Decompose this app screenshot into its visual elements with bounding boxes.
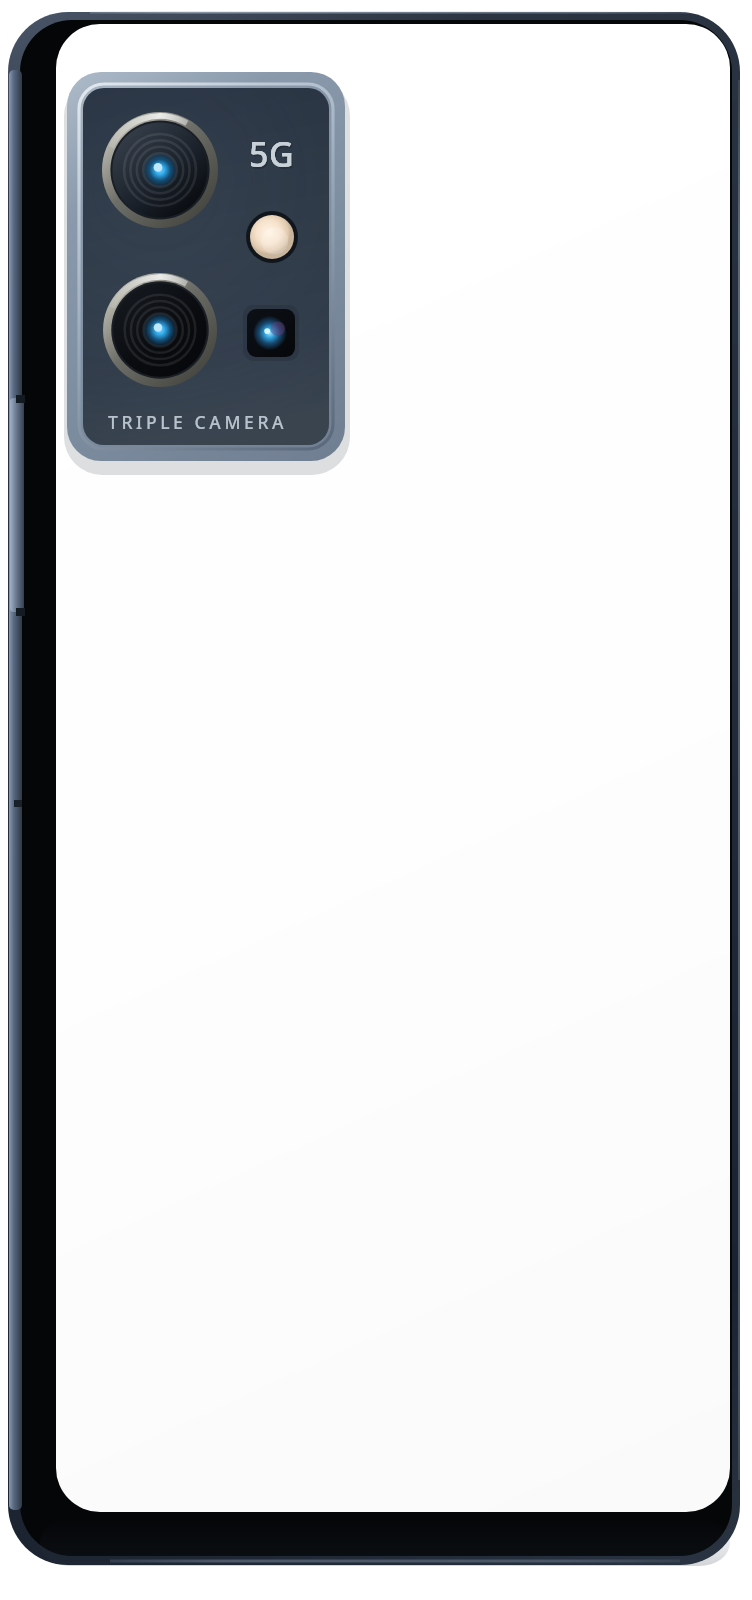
button[interactable]: Phone back panel product render	[0, 0, 752, 1600]
